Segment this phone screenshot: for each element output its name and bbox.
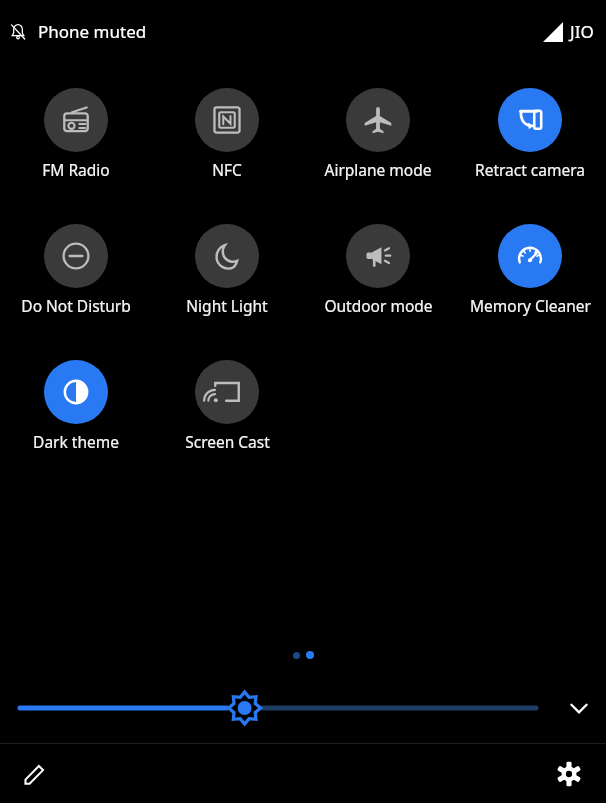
staticText: Do Not Disturb (21, 295, 131, 316)
staticText: Outdoor mode (324, 295, 433, 316)
staticText: Night Light (186, 295, 268, 316)
button[interactable]: Settings (544, 749, 594, 799)
button[interactable]: Outdoor mode (313, 224, 443, 316)
staticText: Phone muted (38, 20, 147, 43)
staticText: NFC (212, 159, 242, 180)
button[interactable]: Edit (10, 749, 60, 799)
button[interactable]: Dark theme (11, 360, 141, 452)
button[interactable] (20, 685, 540, 731)
staticText: Screen Cast (185, 431, 270, 452)
button[interactable]: Memory Cleaner (465, 224, 595, 316)
button[interactable]: FM Radio (11, 88, 141, 180)
button[interactable]: Do Not Disturb (11, 224, 141, 316)
staticText: FM Radio (42, 159, 110, 180)
button[interactable]: Retract camera (465, 88, 595, 180)
staticText: JIO (570, 20, 594, 43)
staticText: Retract camera (475, 159, 585, 180)
button[interactable]: Airplane mode (313, 88, 443, 180)
button[interactable]: Screen Cast (162, 360, 292, 452)
staticText: Dark theme (33, 431, 119, 452)
button[interactable]: Night Light (162, 224, 292, 316)
button[interactable]: Expand (552, 685, 606, 731)
staticText: Airplane mode (324, 159, 432, 180)
staticText: Memory Cleaner (470, 295, 591, 316)
button[interactable]: NFC (162, 88, 292, 180)
